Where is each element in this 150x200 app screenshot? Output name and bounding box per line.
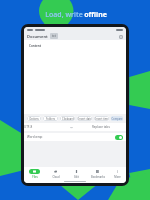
button[interactable]: More options [118,34,123,39]
button[interactable]: Files [24,167,45,180]
staticText: Insert time [95,117,109,121]
button[interactable]: Cloud [45,167,66,180]
button[interactable]: Insert date [77,116,92,121]
staticText: Options [29,117,39,121]
button[interactable]: Clipboard [60,116,75,121]
button[interactable]: Options [27,116,41,121]
button[interactable]: Folders [43,116,58,121]
button[interactable]: Insert time [94,116,109,121]
button[interactable]: Compare [111,116,123,121]
staticText: offline [84,10,107,20]
staticText: Compare [111,117,123,121]
staticText: Insert date [78,117,92,121]
button[interactable]: Word wrap [24,133,126,141]
staticText: Load, write [44,10,84,20]
staticText: Bookmarks [91,175,105,179]
button[interactable]: Bookmarks [87,167,108,180]
staticText: Clipboard [62,117,74,121]
staticText: Files [32,175,38,179]
staticText: Folders [46,117,55,121]
button[interactable]: UTF-8 [24,123,75,131]
staticText: Word wrap [27,135,43,139]
staticText: UTF-8 [24,125,33,129]
button[interactable]: Edit [66,167,87,180]
button[interactable]: More [108,167,126,180]
staticText: Document [27,34,48,39]
staticText: More [114,175,121,179]
staticText: Content [29,44,42,48]
staticText: Cloud [52,175,60,179]
staticText: Edit [74,175,79,179]
staticText: Replace tabs [92,125,110,129]
staticText: txt [52,34,56,38]
button[interactable]: Replace tabs [75,123,126,131]
